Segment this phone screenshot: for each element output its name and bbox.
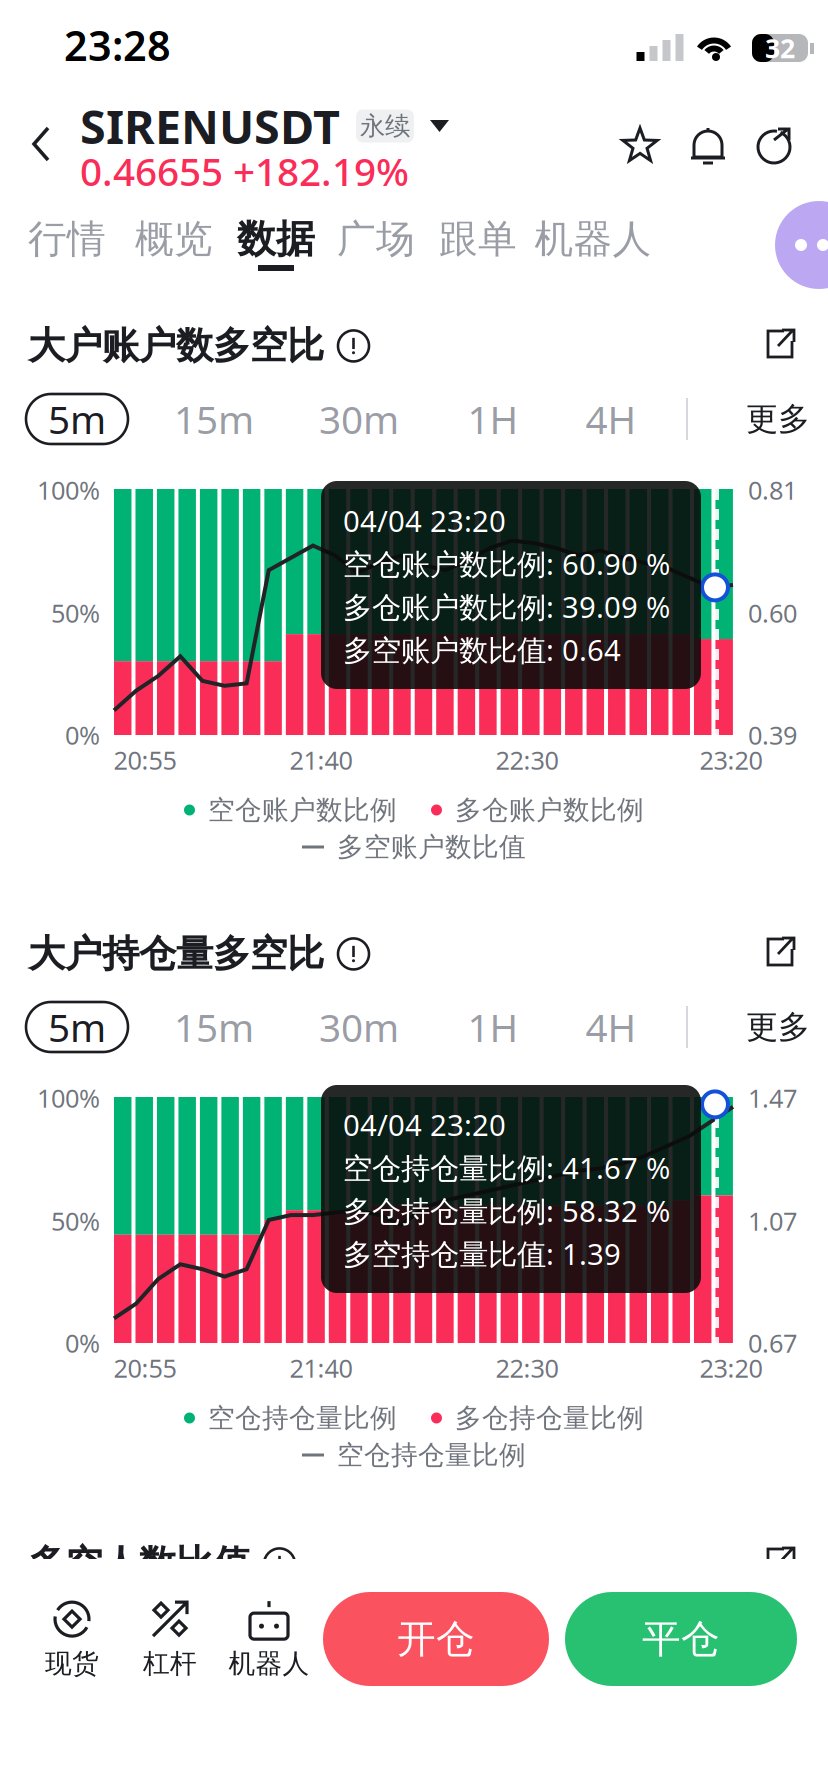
staticText: 开仓 <box>397 1615 475 1663</box>
button[interactable]: 4H <box>573 394 649 444</box>
button[interactable]: 广场 <box>334 209 418 275</box>
staticText: 多仓账户数比例: 39.09 % <box>343 587 670 626</box>
staticText: 空仓持仓量比例 <box>208 1402 397 1434</box>
button[interactable]: 跟单 <box>436 209 520 275</box>
button[interactable]: 开仓 <box>323 1592 549 1686</box>
button[interactable]: 5m <box>26 1002 128 1052</box>
staticText: 更多 <box>746 399 810 439</box>
button[interactable]: 机器人 <box>531 209 655 275</box>
staticText: 20:55 <box>113 1351 176 1385</box>
staticText: 机器人 <box>228 1647 309 1680</box>
staticText: 1H <box>467 1001 518 1053</box>
staticText: 数据 <box>237 215 315 263</box>
staticText: 21:40 <box>289 1351 352 1385</box>
staticText: 15m <box>174 393 254 445</box>
staticText: 空仓账户数比例 <box>208 794 397 826</box>
staticText: 15m <box>174 1001 254 1053</box>
staticText: 4H <box>585 1001 636 1053</box>
staticText: 平仓 <box>642 1615 720 1663</box>
staticText: 多空人数比值 <box>28 1541 250 1587</box>
staticText: 100% <box>37 473 100 507</box>
staticText: 1.07 <box>748 1204 797 1238</box>
staticText: 30m <box>319 1001 399 1053</box>
button[interactable]: 1H <box>455 1002 531 1052</box>
button[interactable]: Open full chart <box>762 329 796 359</box>
staticText: 大户持仓量多空比 <box>28 931 324 977</box>
button[interactable]: 概览 <box>132 209 216 275</box>
button[interactable]: 5m <box>26 394 128 444</box>
staticText: 100% <box>37 1081 100 1115</box>
button[interactable]: 机器人 <box>223 1598 315 1680</box>
button[interactable]: 杠杆 <box>129 1598 211 1680</box>
staticText: SIRENUSDT <box>80 95 340 157</box>
button[interactable]: Share <box>743 108 805 184</box>
staticText: 22:30 <box>495 1351 558 1385</box>
staticText: 30m <box>319 393 399 445</box>
button[interactable]: 15m <box>166 1002 262 1052</box>
button[interactable]: 30m <box>311 394 407 444</box>
staticText: 更多 <box>746 1007 810 1047</box>
staticText: 多空账户数比值 <box>337 831 526 863</box>
button[interactable]: 4H <box>573 1002 649 1052</box>
button[interactable]: 更多 <box>741 1002 815 1052</box>
staticText: 行情 <box>28 215 106 263</box>
staticText: 5m <box>48 393 106 445</box>
staticText: 04/04 23:20 <box>343 501 506 540</box>
staticText: 机器人 <box>534 215 651 263</box>
staticText: 空仓持仓量比例 <box>337 1439 526 1471</box>
button[interactable]: Favourite <box>607 108 673 184</box>
button[interactable]: 数据 <box>234 209 318 275</box>
staticText: 23:20 <box>699 1351 762 1385</box>
staticText: 4H <box>585 393 636 445</box>
staticText: 32 <box>765 30 795 66</box>
staticText: 5m <box>48 1001 106 1053</box>
button[interactable]: 平仓 <box>565 1592 797 1686</box>
staticText: 概览 <box>135 215 213 263</box>
button[interactable]: Alerts <box>678 108 738 184</box>
staticText: 多空持仓量比值: 1.39 <box>343 1234 621 1273</box>
staticText: 1H <box>467 393 518 445</box>
staticText: 1.47 <box>748 1081 797 1115</box>
staticText: 永续 <box>360 110 410 141</box>
staticText: 跟单 <box>439 215 517 263</box>
staticText: 0% <box>65 718 100 752</box>
staticText: 多空账户数比值: 0.64 <box>343 630 621 669</box>
staticText: 多仓持仓量比例: 58.32 % <box>343 1191 670 1230</box>
staticText: 21:40 <box>289 743 352 777</box>
button[interactable]: 更多 <box>741 394 815 444</box>
button[interactable]: 现货 <box>31 1598 113 1680</box>
staticText: 22:30 <box>495 743 558 777</box>
staticText: 0.81 <box>748 473 797 507</box>
staticText: 空仓账户数比例: 60.90 % <box>343 544 670 583</box>
button[interactable]: Open full chart <box>762 1547 796 1577</box>
staticText: 0.39 <box>748 718 797 752</box>
staticText: 0.67 <box>748 1326 797 1360</box>
staticText: 大户账户数多空比 <box>28 323 324 369</box>
staticText: 杠杆 <box>143 1647 197 1680</box>
button[interactable]: Back <box>4 94 80 194</box>
button[interactable]: 30m <box>311 1002 407 1052</box>
staticText: 0% <box>65 1326 100 1360</box>
staticText: 50% <box>51 1204 100 1238</box>
staticText: 空仓持仓量比例: 41.67 % <box>343 1148 670 1187</box>
button[interactable]: 15m <box>166 394 262 444</box>
staticText: 0.60 <box>748 596 797 630</box>
button[interactable]: 1H <box>455 394 531 444</box>
staticText: 23:20 <box>699 743 762 777</box>
staticText: 23:28 <box>64 18 171 72</box>
staticText: 多仓持仓量比例 <box>455 1402 644 1434</box>
staticText: 04/04 23:20 <box>343 1105 506 1144</box>
staticText: 广场 <box>337 215 415 263</box>
staticText: 20:55 <box>113 743 176 777</box>
button[interactable]: Open full chart <box>762 937 796 967</box>
button[interactable]: 行情 <box>25 209 109 275</box>
staticText: 多仓账户数比例 <box>455 794 644 826</box>
staticText: 50% <box>51 596 100 630</box>
staticText: 0.46655 +182.19% <box>80 145 409 197</box>
staticText: 现货 <box>45 1647 99 1680</box>
